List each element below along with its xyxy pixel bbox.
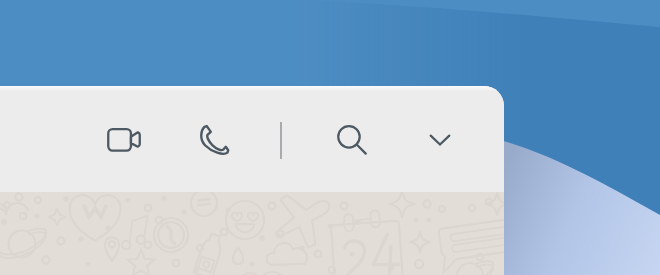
button[interactable]: Video call	[101, 117, 147, 163]
button[interactable]: More options	[417, 117, 463, 163]
button[interactable]: Voice call	[191, 117, 237, 163]
button[interactable]: Search	[329, 117, 375, 163]
